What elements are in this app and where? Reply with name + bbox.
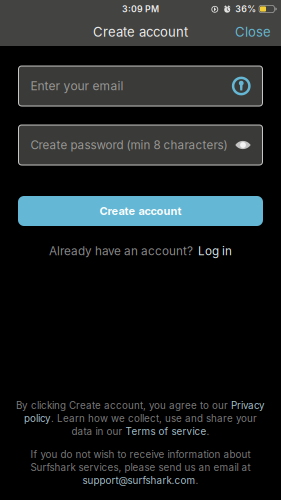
button[interactable]: Already have an account? xyxy=(49,240,232,262)
staticText: Close xyxy=(235,24,271,40)
staticText: Create account xyxy=(93,24,188,40)
staticText: If you do not wish to receive informatio… xyxy=(30,449,250,460)
staticText: Create account xyxy=(99,204,181,218)
staticText: . Learn how we collect, use and share yo… xyxy=(51,413,257,424)
staticText: data in our xyxy=(71,426,125,437)
staticText: Surfshark services, please send us an em… xyxy=(30,462,250,473)
staticText: Terms of service xyxy=(125,426,206,437)
staticText: policy xyxy=(24,413,51,424)
button[interactable]: Enter your email xyxy=(18,66,262,106)
staticText: Log in xyxy=(198,244,232,258)
staticText: support@surfshark.com xyxy=(82,475,195,486)
staticText: 3:09 PM xyxy=(122,4,159,14)
button[interactable]: Create account xyxy=(18,196,263,226)
staticText: . xyxy=(206,426,209,437)
staticText: 36% xyxy=(235,4,256,14)
staticText: Already have an account? xyxy=(49,244,193,258)
staticText: Enter your email xyxy=(30,79,123,93)
button[interactable]: Close xyxy=(225,17,281,47)
button[interactable]: Create password (min 8 characters) xyxy=(18,125,262,165)
staticText: By clicking Create account, you agree to… xyxy=(16,400,231,411)
staticText: Privacy xyxy=(231,400,265,411)
staticText: . xyxy=(195,475,198,486)
staticText: Create password (min 8 characters) xyxy=(30,138,227,152)
